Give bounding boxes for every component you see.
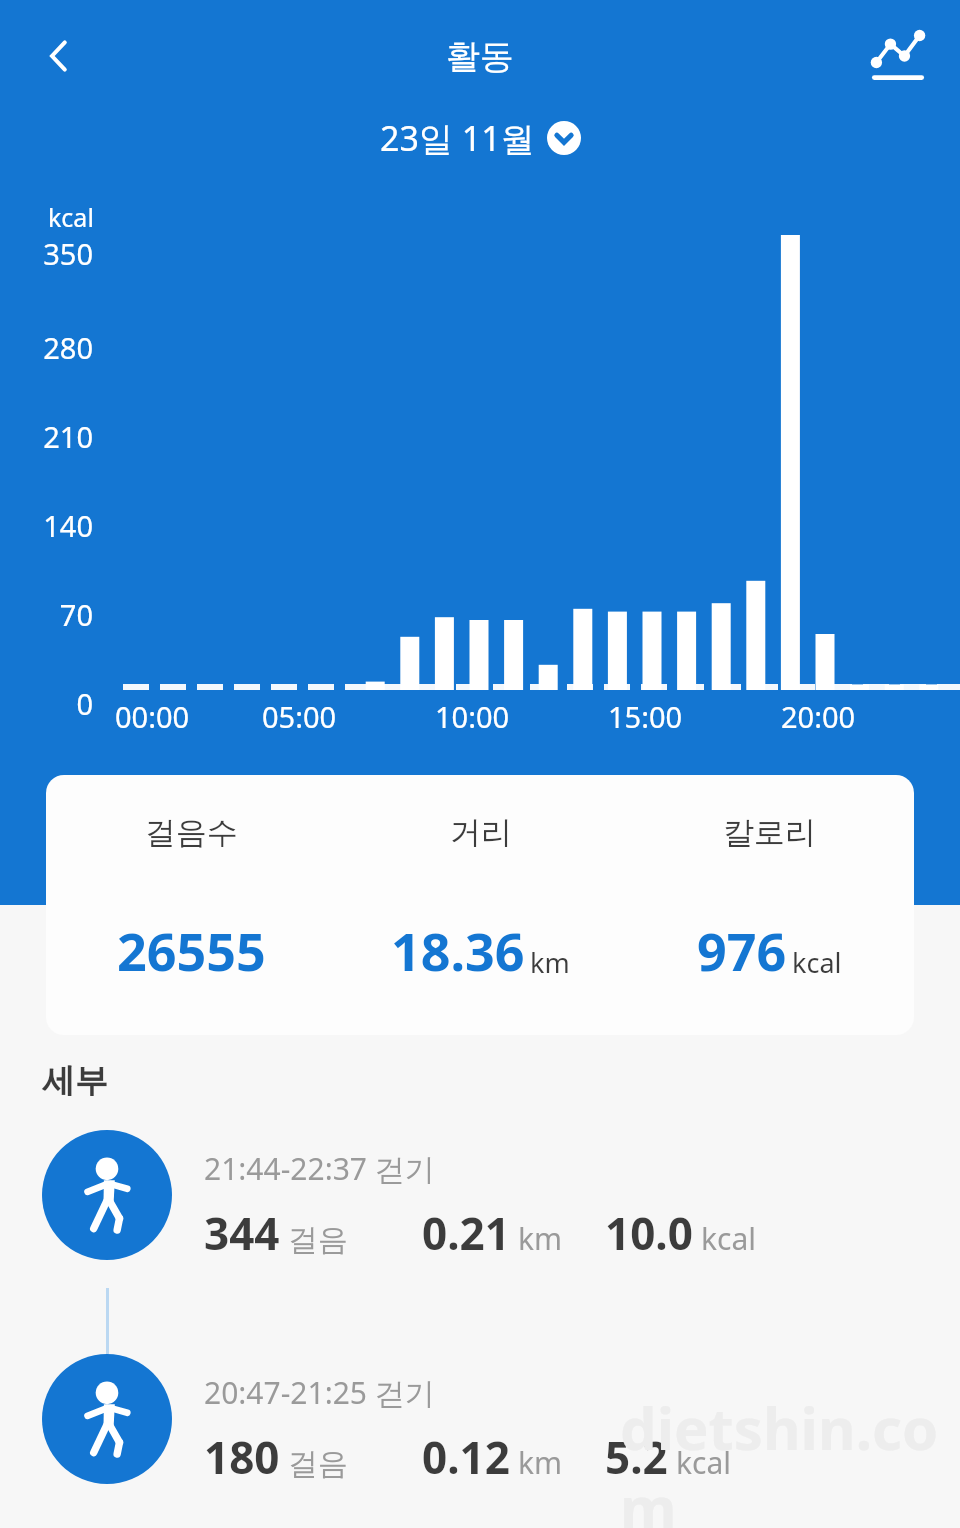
staticText: 26555	[117, 915, 266, 986]
staticText: km	[530, 944, 570, 981]
staticText: 140	[43, 506, 93, 545]
staticText: 5.2	[605, 1427, 668, 1487]
staticText: 23일 11월	[380, 115, 535, 161]
staticText: 세부	[42, 1060, 108, 1102]
staticText: 0.21	[422, 1203, 510, 1263]
staticText: 0.12	[422, 1427, 510, 1487]
staticText: 350	[43, 234, 93, 273]
staticText: 180	[204, 1427, 280, 1487]
staticText: 344	[204, 1203, 280, 1263]
staticText: 걸음	[288, 1445, 348, 1483]
button[interactable]: Back	[20, 16, 100, 96]
staticText: 20:47-21:25 걷기	[204, 1372, 435, 1413]
staticText: 활동	[446, 35, 514, 78]
staticText: 20:00	[781, 697, 856, 736]
button[interactable]: Statistics chart	[858, 16, 938, 96]
staticText: 걸음	[288, 1221, 348, 1259]
staticText: 70	[59, 595, 93, 634]
button[interactable]: 23일 11월	[380, 115, 581, 161]
staticText: dietshin.com	[620, 1388, 960, 1528]
button[interactable]: 21:44-22:37 걷기	[0, 1130, 960, 1354]
staticText: 10.0	[605, 1203, 693, 1263]
button[interactable]: 걸음수	[46, 775, 914, 1035]
staticText: 05:00	[262, 697, 337, 736]
staticText: kcal	[676, 1442, 731, 1483]
button[interactable]: 20:47-21:25 걷기	[0, 1354, 960, 1528]
staticText: 00:00	[115, 697, 190, 736]
staticText: 0	[76, 684, 93, 723]
staticText: 210	[43, 417, 93, 456]
staticText: kcal	[701, 1218, 756, 1259]
staticText: km	[518, 1442, 563, 1483]
staticText: 10:00	[435, 697, 510, 736]
staticText: kcal	[48, 200, 94, 234]
staticText: 칼로리	[723, 813, 816, 852]
staticText: 21:44-22:37 걷기	[204, 1148, 435, 1189]
staticText: 18.36	[391, 915, 525, 986]
staticText: 280	[43, 328, 93, 367]
staticText: 거리	[450, 813, 512, 852]
staticText: kcal	[792, 944, 842, 981]
staticText: km	[518, 1218, 563, 1259]
staticText: 15:00	[608, 697, 683, 736]
staticText: 걸음수	[145, 813, 238, 852]
staticText: 976	[697, 915, 787, 986]
